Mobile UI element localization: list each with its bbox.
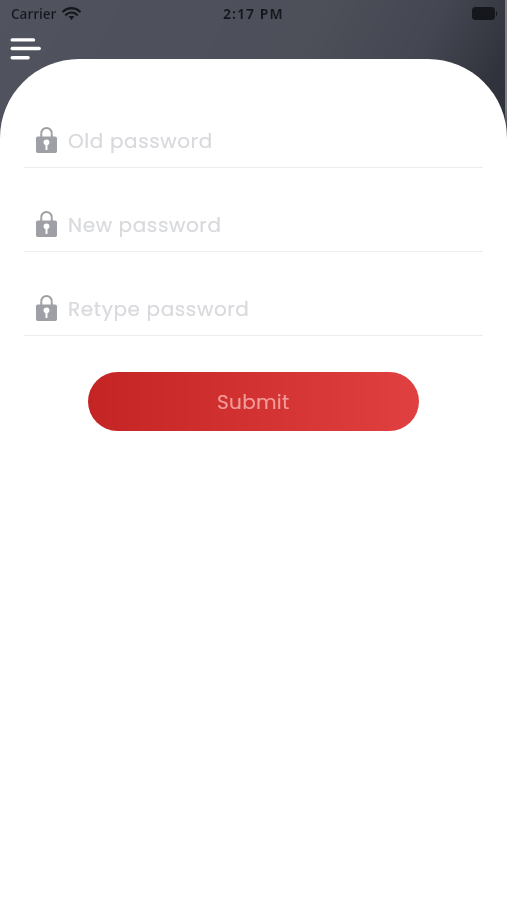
staticText: Carrier xyxy=(11,5,57,23)
button[interactable]: Menu xyxy=(2,28,48,64)
button[interactable]: Retype password xyxy=(24,276,483,336)
button[interactable]: Old password xyxy=(24,108,483,168)
staticText: 2:17 PM xyxy=(223,4,284,23)
staticText: New password xyxy=(68,211,222,239)
staticText: Retype password xyxy=(68,295,250,323)
staticText: Submit xyxy=(217,388,290,416)
button[interactable]: Submit xyxy=(88,372,419,431)
staticText: Old password xyxy=(68,127,213,155)
button[interactable]: New password xyxy=(24,192,483,252)
